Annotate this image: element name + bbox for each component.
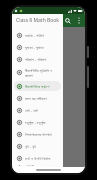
button[interactable]: মুনাফা - মুনাফা (14, 42, 61, 52)
button[interactable]: পিথাগোরাসের উপপাদ্য (14, 129, 61, 139)
staticText: সেট - সেট (25, 108, 38, 113)
button[interactable]: Search (63, 16, 72, 25)
staticText: তথ্য ও উপাত্ত বিন্যাস (25, 156, 51, 161)
button[interactable]: তথ্য ও উপাত্ত বিন্যাস (14, 153, 61, 163)
staticText: বৃত্ত - বৃত্ত (25, 144, 36, 149)
staticText: চতুর্ভুজ - চতুর্ভুজ (25, 120, 46, 125)
button[interactable]: সেট - সেট (14, 105, 61, 115)
button[interactable]: পরিমাপ - পরিমাপ (14, 54, 61, 64)
button[interactable]: বীজগণিতীয় সূত্রাবলি ও প্রয়োগ (14, 66, 61, 79)
staticText: সরল সহ সমীকরণ (25, 96, 47, 101)
button[interactable]: সরল সহ সমীকরণ (14, 93, 61, 103)
staticText: বীজগণিতীয় সূত্রাবলি ও প্রয়োগ (25, 68, 58, 78)
staticText: পরিশিষ্ট (25, 165, 34, 166)
staticText: মুনাফা - মুনাফা (25, 45, 44, 50)
staticText: Class 8 Math Book (16, 17, 60, 24)
button[interactable]: অধ্যায় - প্যাটার্ন (14, 30, 61, 40)
button[interactable]: বৃত্ত - বৃত্ত (14, 141, 61, 151)
staticText: বীজগাণিতিক ভগ্নাংশ (25, 84, 50, 89)
button[interactable]: চতুর্ভুজ - চতুর্ভুজ (14, 117, 61, 127)
staticText: পরিমাপ - পরিমাপ (25, 57, 47, 62)
staticText: অধ্যায় - প্যাটার্ন (25, 33, 44, 38)
button[interactable]: পরিশিষ্ট (14, 165, 61, 166)
button[interactable]: More options (74, 16, 83, 25)
button[interactable]: বীজগাণিতিক ভগ্নাংশ (14, 81, 61, 91)
staticText: পিথাগোরাসের উপপাদ্য (25, 132, 52, 137)
